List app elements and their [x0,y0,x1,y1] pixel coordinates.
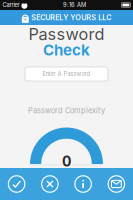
staticText: Carrier [2,1,19,8]
button[interactable]: Info [66,168,100,200]
button[interactable]: Accept [0,168,33,200]
staticText: 9:16 AM [63,1,86,8]
staticText: 0 [62,153,71,170]
staticText: Enter A Password [42,70,90,77]
staticText: Password Complexity [28,106,105,115]
button[interactable]: Clear [33,168,66,200]
staticText: SECURELY YOURS LLC [31,13,111,22]
button[interactable]: Mail [100,168,133,200]
staticText: Check [43,41,90,59]
staticText: Password [28,24,104,44]
